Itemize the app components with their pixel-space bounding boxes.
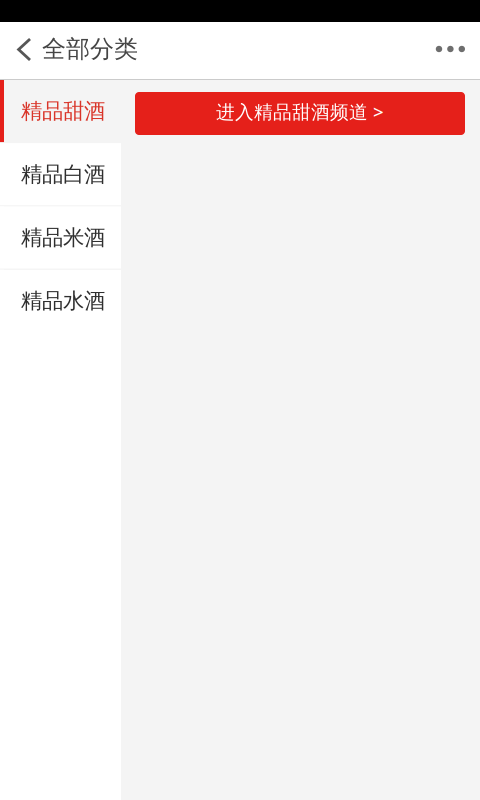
button[interactable]: 进入精品甜酒频道 > — [135, 92, 465, 135]
button[interactable]: More options — [416, 22, 480, 79]
staticText: 进入精品甜酒频道 > — [216, 99, 384, 124]
staticText: 全部分类 — [42, 34, 138, 64]
staticText: 精品水酒 — [21, 288, 105, 314]
button[interactable]: 精品米酒 — [0, 206, 121, 270]
button[interactable]: 精品水酒 — [0, 270, 121, 333]
staticText: 精品白酒 — [21, 161, 105, 187]
staticText: 精品米酒 — [21, 224, 105, 251]
button[interactable]: 精品甜酒 — [0, 80, 121, 143]
button[interactable]: 精品白酒 — [0, 143, 121, 206]
button[interactable]: 全部分类 — [0, 22, 190, 79]
staticText: 精品甜酒 — [21, 98, 105, 124]
